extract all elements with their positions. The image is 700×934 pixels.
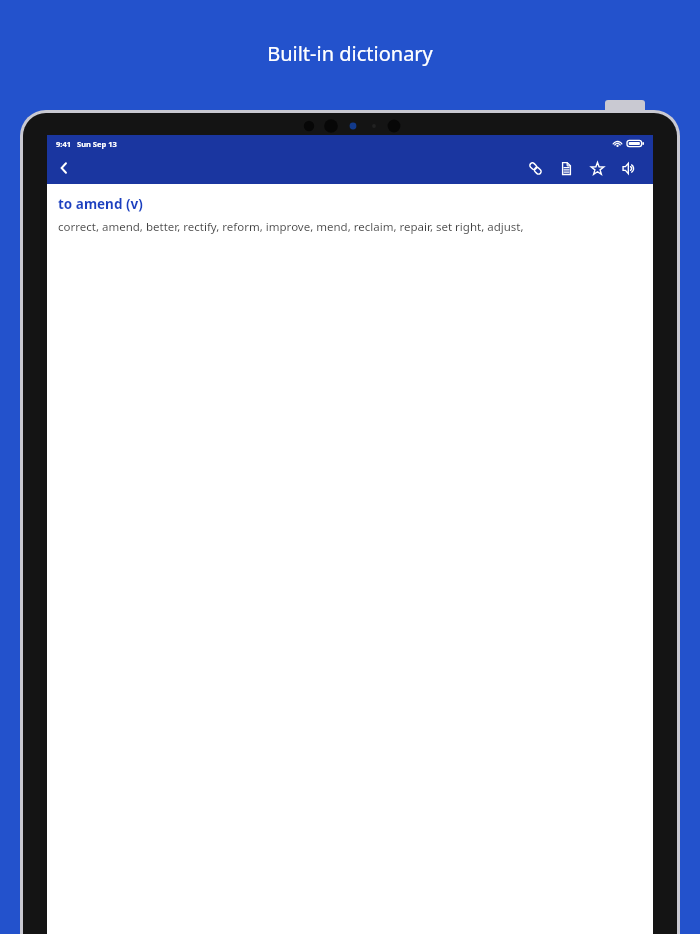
staticText: correct, amend, better, rectify, reform,… <box>58 219 524 235</box>
button[interactable]: to amend (v) <box>58 195 143 213</box>
staticText: Built-in dictionary <box>0 40 700 67</box>
button[interactable]: Document <box>551 153 582 184</box>
button[interactable]: Favourite <box>582 153 613 184</box>
staticText: Sun Sep 13 <box>77 139 117 149</box>
button[interactable]: Pronounce <box>613 153 644 184</box>
button[interactable]: Back <box>50 154 78 182</box>
staticText: 9:41 <box>56 139 71 149</box>
button[interactable]: Share link <box>520 153 551 184</box>
